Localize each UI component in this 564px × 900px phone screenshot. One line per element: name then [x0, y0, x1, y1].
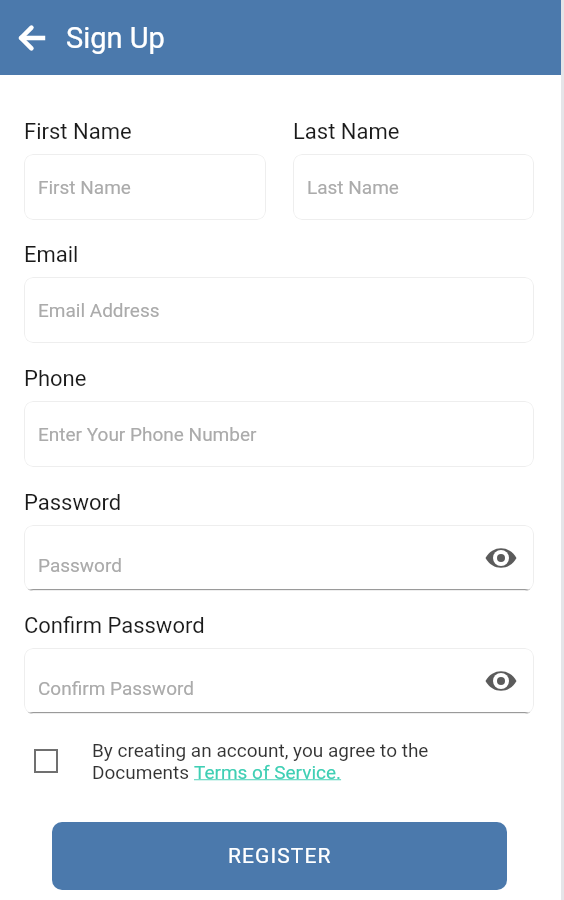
staticText: First Name: [24, 119, 132, 145]
staticText: Password: [24, 490, 122, 516]
staticText: Confirm Password: [24, 613, 205, 639]
button[interactable]: First Name: [24, 154, 266, 220]
staticText: Phone: [24, 366, 87, 392]
staticText: Email Address: [38, 299, 160, 321]
staticText: Password: [38, 554, 122, 576]
button[interactable]: Enter Your Phone Number: [24, 401, 534, 467]
button[interactable]: Email Address: [24, 277, 534, 343]
staticText: First Name: [38, 176, 131, 198]
staticText: Email: [24, 242, 79, 268]
staticText: Last Name: [293, 119, 400, 145]
button[interactable]: REGISTER: [52, 822, 507, 890]
staticText: Confirm Password: [38, 677, 194, 699]
button[interactable]: Password: [24, 525, 534, 591]
button[interactable]: Confirm Password: [24, 648, 534, 714]
button[interactable]: Last Name: [293, 154, 534, 220]
button[interactable]: Show password: [482, 662, 520, 700]
button[interactable]: Accept terms: [34, 749, 58, 773]
staticText: Last Name: [307, 176, 399, 198]
staticText: Sign Up: [66, 21, 165, 55]
button[interactable]: Back: [11, 16, 55, 60]
staticText: Enter Your Phone Number: [38, 423, 257, 445]
button[interactable]: Terms of Service.: [194, 761, 342, 783]
button[interactable]: Show password: [482, 539, 520, 577]
staticText: REGISTER: [228, 844, 332, 869]
staticText: By creating an account, you agree to the: [92, 739, 429, 761]
staticText: Documents: [92, 761, 194, 783]
